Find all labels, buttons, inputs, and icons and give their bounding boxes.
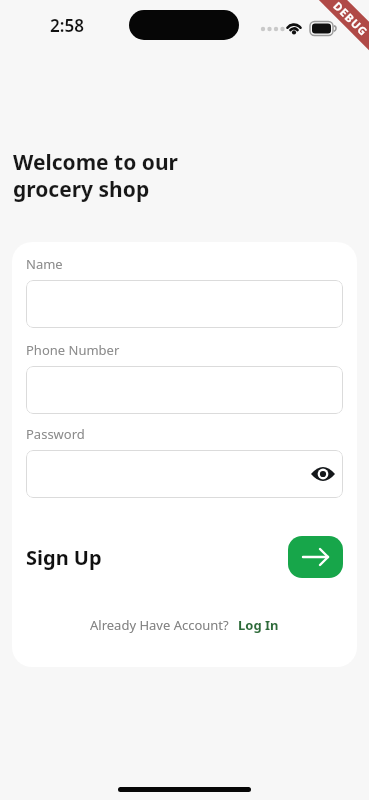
staticText: Phone Number: [26, 341, 120, 359]
staticText: Already Have Account?: [90, 616, 229, 634]
staticText: 2:58: [50, 14, 84, 37]
staticText: Name: [26, 255, 63, 273]
staticText: Password: [26, 425, 85, 443]
staticText: Sign Up: [26, 544, 102, 571]
button[interactable]: [26, 450, 343, 498]
button[interactable]: [26, 280, 343, 328]
staticText: DEBUG: [330, 0, 369, 39]
button[interactable]: [26, 366, 343, 414]
button[interactable]: Log In: [238, 616, 279, 634]
button[interactable]: [288, 536, 343, 578]
staticText: Welcome to our grocery shop: [13, 148, 178, 203]
